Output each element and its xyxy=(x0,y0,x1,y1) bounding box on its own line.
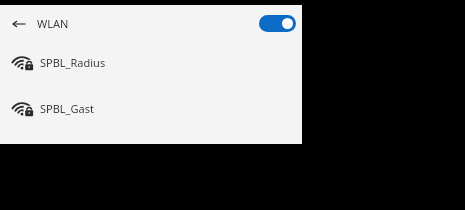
button[interactable]: WLAN on xyxy=(259,15,296,32)
staticText: WLAN xyxy=(37,16,69,31)
button[interactable]: SPBL_Radius xyxy=(0,51,302,73)
button[interactable]: Back xyxy=(11,16,27,32)
staticText: SPBL_Gast xyxy=(40,101,94,116)
staticText: SPBL_Radius xyxy=(40,55,106,70)
button[interactable]: SPBL_Gast xyxy=(0,97,302,119)
